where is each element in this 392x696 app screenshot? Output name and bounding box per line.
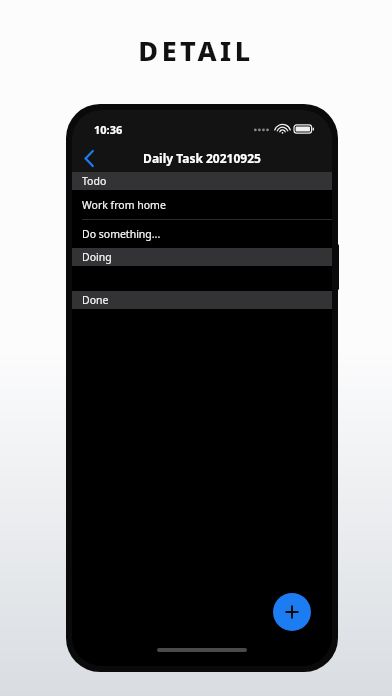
- button[interactable]: Todo: [72, 172, 332, 190]
- button[interactable]: Do something...: [72, 220, 332, 248]
- staticText: Daily Task 20210925: [143, 150, 261, 166]
- staticText: Todo: [82, 174, 107, 188]
- button[interactable]: Work from home: [72, 190, 332, 219]
- staticText: DETAIL: [138, 32, 254, 69]
- staticText: Do something...: [82, 227, 161, 241]
- staticText: Work from home: [82, 198, 166, 212]
- button[interactable]: Back: [72, 144, 106, 172]
- button[interactable]: Add task: [273, 593, 311, 631]
- button[interactable]: Done: [72, 291, 332, 309]
- staticText: 10:36: [94, 122, 123, 137]
- staticText: Done: [82, 293, 109, 307]
- button[interactable]: Doing: [72, 248, 332, 266]
- staticText: Doing: [82, 250, 112, 264]
